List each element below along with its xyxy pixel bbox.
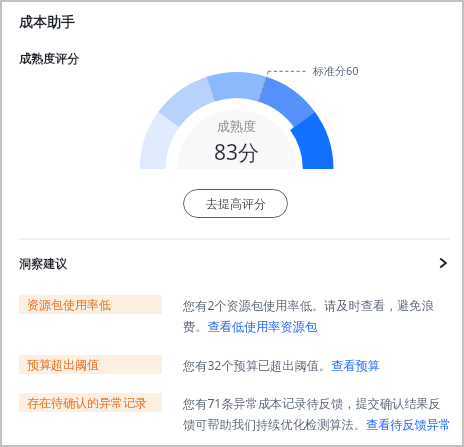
staticText: 存在待确认的异常记录 bbox=[27, 395, 147, 410]
staticText: 成熟度 bbox=[217, 118, 256, 134]
staticText: 洞察建议 bbox=[19, 256, 67, 271]
staticText: 标准分60 bbox=[313, 63, 359, 78]
button[interactable]: 预算超出阈值 bbox=[19, 355, 459, 374]
staticText: 预算超出阈值 bbox=[27, 357, 99, 372]
button[interactable]: 洞察建议 bbox=[2, 249, 462, 277]
staticText: 您有32个预算已超出阈值。查看预算 bbox=[183, 357, 380, 374]
other: 查看更多洞察建议 bbox=[436, 256, 450, 270]
staticText: 资源包使用率低 bbox=[27, 297, 111, 312]
staticText: 成熟度评分 bbox=[19, 51, 79, 66]
staticText: 您有71条异常成本记录待反馈，提交确认结果反 馈可帮助我们持续优化检测算法。查看… bbox=[183, 395, 452, 433]
staticText: 您有2个资源包使用率低。请及时查看，避免浪 费。查看低使用率资源包 bbox=[183, 297, 434, 335]
staticText: 成本助手 bbox=[19, 14, 75, 32]
button[interactable]: 资源包使用率低 bbox=[19, 295, 459, 333]
staticText: 83分 bbox=[214, 138, 260, 167]
button[interactable]: 去提高评分 bbox=[183, 189, 288, 218]
staticText: 去提高评分 bbox=[206, 196, 266, 211]
button[interactable]: 存在待确认的异常记录 bbox=[19, 393, 459, 431]
